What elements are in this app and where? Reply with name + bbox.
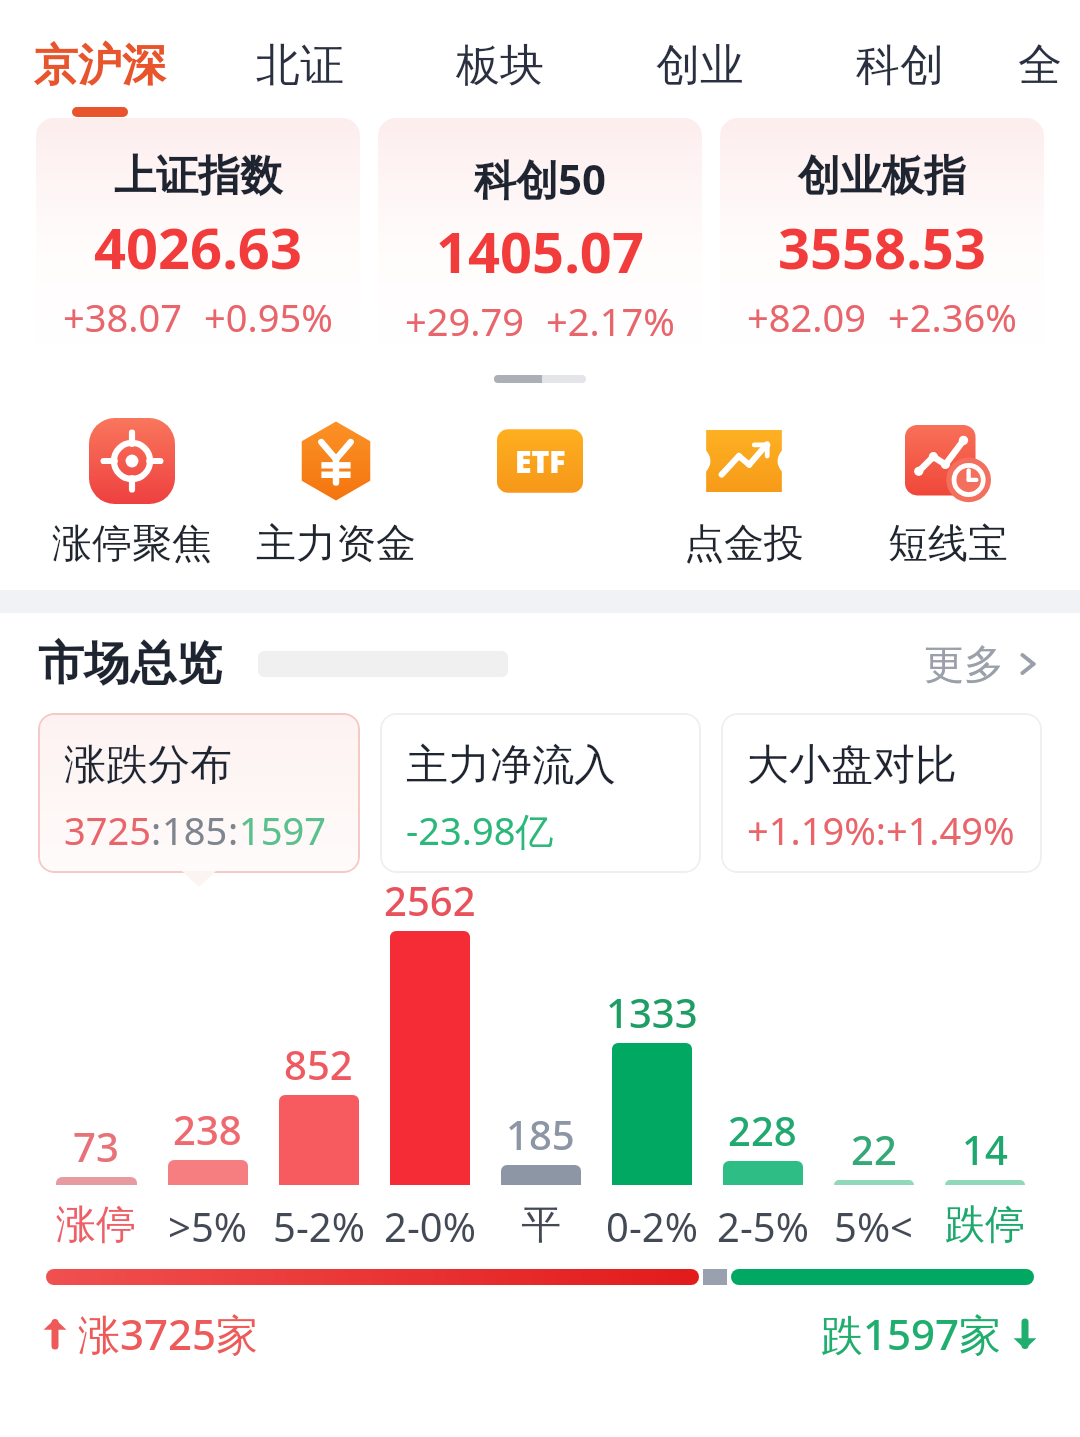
button[interactable]: 点金投 <box>642 400 846 590</box>
staticText: 238 <box>173 1102 242 1156</box>
staticText: 2562 <box>384 873 476 927</box>
staticText: 京沪深 <box>34 38 166 93</box>
staticText: 涨停聚焦 <box>52 518 212 568</box>
staticText: 市场总览 <box>38 635 222 693</box>
button[interactable]: 涨停聚焦 <box>30 400 234 590</box>
staticText: 22 <box>851 1122 897 1176</box>
staticText: +38.07 <box>63 291 182 343</box>
staticText: 创业 <box>656 38 744 93</box>
button[interactable]: 涨跌分布 <box>38 713 360 873</box>
staticText: -23.98亿 <box>406 804 554 856</box>
button[interactable]: 京沪深 <box>0 0 200 118</box>
button[interactable]: 北证 <box>200 0 400 118</box>
button[interactable]: 全 <box>1000 0 1080 118</box>
staticText: 主力资金 <box>256 518 416 568</box>
staticText: 5%< <box>834 1199 913 1253</box>
staticText: ETF <box>515 441 566 482</box>
staticText: 1597 <box>239 804 326 856</box>
button[interactable]: 科创 <box>800 0 1000 118</box>
staticText: 0-2% <box>606 1199 698 1253</box>
staticText: +82.09 <box>747 291 866 343</box>
staticText: +2.36% <box>888 291 1017 343</box>
button[interactable]: 上证指数 <box>36 118 360 358</box>
staticText: 4026.63 <box>94 209 302 285</box>
staticText: 上证指数 <box>114 150 282 203</box>
staticText: 5-2% <box>273 1199 365 1253</box>
staticText: 1333 <box>606 985 698 1039</box>
staticText: 1405.07 <box>436 213 644 289</box>
staticText: +2.17% <box>546 295 675 347</box>
button[interactable]: 创业 <box>600 0 800 118</box>
button[interactable]: 更多 <box>924 639 1042 689</box>
staticText: 228 <box>728 1103 797 1157</box>
staticText: 涨停 <box>56 1199 136 1249</box>
staticText: 北证 <box>256 38 344 93</box>
staticText: 短线宝 <box>888 518 1008 568</box>
staticText: 点金投 <box>684 518 804 568</box>
staticText: 全 <box>1018 38 1062 93</box>
staticText: 跌停 <box>945 1199 1025 1249</box>
staticText: 科创 <box>856 38 944 93</box>
staticText: 852 <box>284 1037 353 1091</box>
staticText: 创业板指 <box>798 150 966 203</box>
staticText: 跌1597家 <box>821 1305 1002 1362</box>
staticText: 主力净流入 <box>406 739 616 792</box>
staticText: >5% <box>168 1199 247 1253</box>
button[interactable]: 主力资金 <box>234 400 438 590</box>
staticText: 更多 <box>924 639 1004 689</box>
staticText: +29.79 <box>405 295 524 347</box>
staticText: 2-5% <box>717 1199 809 1253</box>
staticText: 3558.53 <box>778 209 986 285</box>
staticText: +0.95% <box>204 291 333 343</box>
button[interactable]: 科创50 <box>378 118 702 358</box>
staticText: 2-0% <box>384 1199 476 1253</box>
button[interactable]: ETF专区 <box>438 400 642 590</box>
staticText: 3725 <box>64 804 151 856</box>
staticText: 涨跌分布 <box>64 739 232 792</box>
button[interactable]: 大小盘对比 <box>721 713 1042 873</box>
staticText: 185 <box>506 1107 575 1161</box>
staticText: 平 <box>521 1199 561 1249</box>
staticText: 185 <box>162 804 228 856</box>
staticText: 14 <box>962 1122 1008 1176</box>
staticText: 板块 <box>456 38 544 93</box>
button[interactable]: 创业板指 <box>720 118 1044 358</box>
button[interactable]: 短线宝 <box>846 400 1050 590</box>
button[interactable]: 板块 <box>400 0 600 118</box>
staticText: 73 <box>73 1119 119 1173</box>
staticText: +1.19%:+1.49% <box>747 804 1015 856</box>
staticText: : <box>151 804 162 856</box>
staticText: : <box>228 804 239 856</box>
staticText: 科创50 <box>474 150 607 207</box>
staticText: 涨3725家 <box>78 1305 259 1362</box>
button[interactable]: 主力净流入 <box>380 713 701 873</box>
staticText: 大小盘对比 <box>747 739 957 792</box>
